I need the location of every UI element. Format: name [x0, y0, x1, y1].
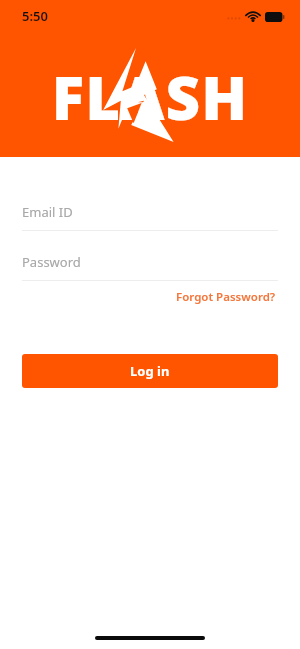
staticText: Password [22, 253, 81, 271]
staticText: Email ID [22, 203, 73, 221]
staticText: FLASH [0, 56, 300, 138]
staticText: Forgot Password? [176, 289, 276, 305]
button[interactable]: Log in [22, 354, 278, 388]
staticText: Log in [130, 362, 170, 380]
other: Cellular signal [227, 12, 241, 22]
button[interactable]: Forgot Password? [174, 286, 278, 308]
staticText: 5:50 [22, 7, 48, 25]
button[interactable]: Email ID [0, 203, 300, 231]
other: Battery [265, 12, 285, 22]
button[interactable]: Password [0, 253, 300, 281]
other: Wi-Fi [246, 11, 260, 22]
